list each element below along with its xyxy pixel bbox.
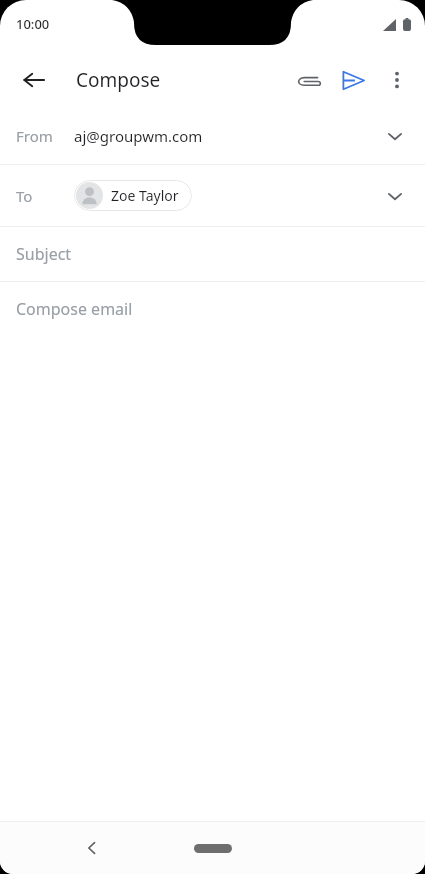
button[interactable]: More options bbox=[375, 58, 419, 102]
staticText: Compose bbox=[76, 67, 161, 93]
button[interactable]: Send bbox=[331, 58, 375, 102]
button[interactable]: Subject bbox=[0, 227, 425, 281]
staticText: aj@groupwm.com bbox=[74, 126, 203, 146]
button[interactable]: Compose email bbox=[0, 282, 425, 336]
staticText: To bbox=[16, 186, 33, 206]
button[interactable]: Attach file bbox=[287, 58, 331, 102]
staticText: From bbox=[16, 126, 53, 146]
button[interactable]: Home bbox=[178, 833, 248, 863]
button[interactable]: Back bbox=[14, 60, 54, 100]
staticText: Subject bbox=[16, 243, 72, 265]
button[interactable]: Zoe Taylor bbox=[74, 180, 192, 211]
staticText: Compose email bbox=[16, 298, 133, 320]
staticText: Zoe Taylor bbox=[111, 186, 179, 205]
staticText: 10:00 bbox=[16, 15, 50, 33]
button[interactable]: Back bbox=[72, 828, 112, 868]
button[interactable]: From bbox=[0, 108, 425, 164]
button[interactable]: To bbox=[0, 165, 425, 226]
